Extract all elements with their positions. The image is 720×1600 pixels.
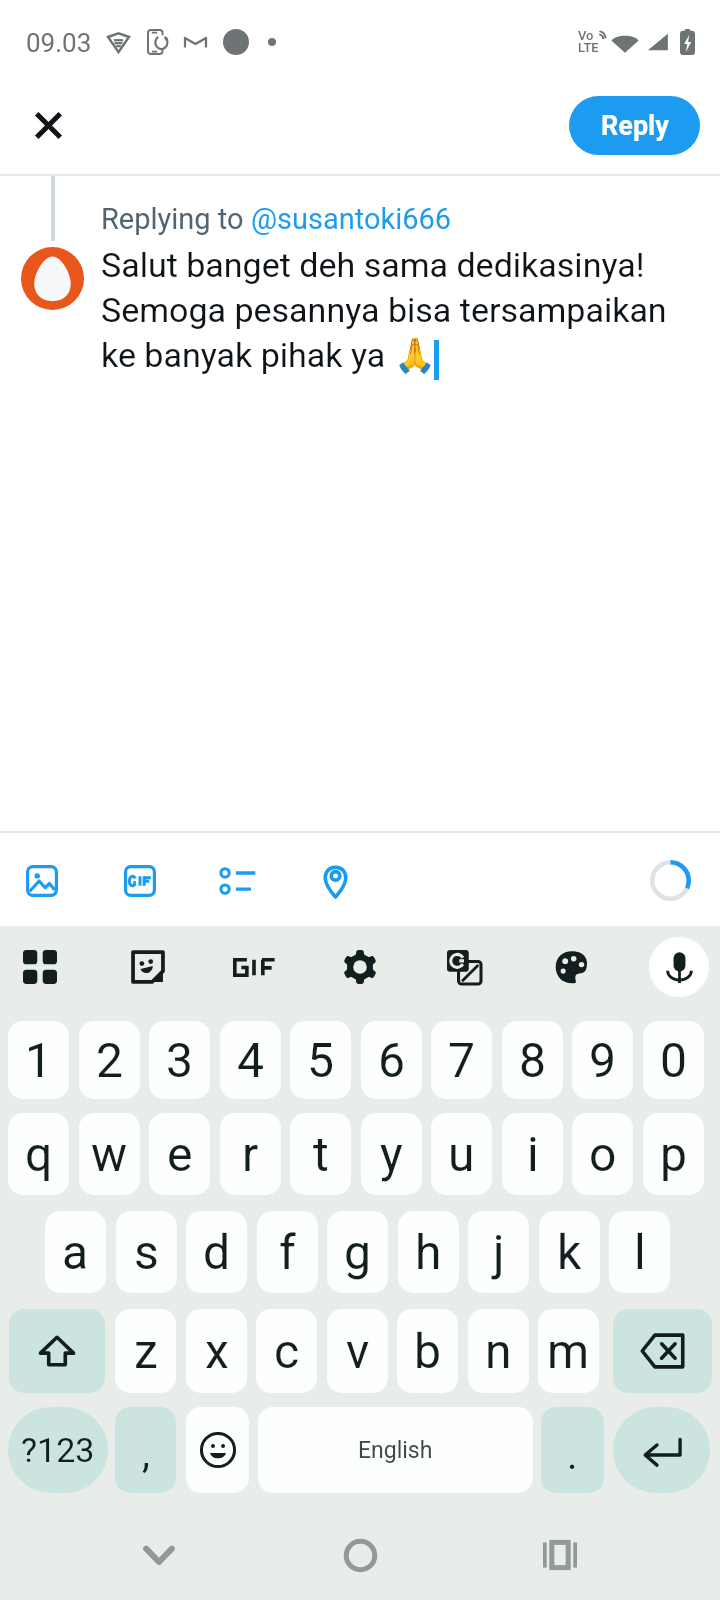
button[interactable]: x <box>186 1309 247 1393</box>
staticText: LTE <box>578 40 599 55</box>
button[interactable]: g <box>327 1211 388 1293</box>
staticText: 4 <box>237 1032 264 1088</box>
staticText: x <box>205 1323 229 1379</box>
button[interactable]: b <box>397 1309 458 1393</box>
staticText: o <box>589 1126 617 1182</box>
button[interactable]: a <box>45 1211 106 1293</box>
button[interactable]: Apps <box>8 935 72 999</box>
button[interactable]: d <box>186 1211 247 1293</box>
button[interactable]: i <box>502 1113 563 1195</box>
button[interactable]: w <box>79 1113 140 1195</box>
button[interactable]: Recents <box>525 1520 595 1590</box>
button[interactable]: m <box>538 1309 599 1393</box>
button[interactable]: 1 <box>8 1021 69 1099</box>
button[interactable]: Emoji <box>186 1407 249 1493</box>
staticText: 2 <box>96 1032 123 1088</box>
button[interactable]: c <box>256 1309 317 1393</box>
button[interactable]: 2 <box>79 1021 140 1099</box>
staticText: u <box>448 1126 475 1182</box>
staticText: 7 <box>448 1032 475 1088</box>
button[interactable]: English <box>258 1407 533 1493</box>
button[interactable]: 0 <box>643 1021 704 1099</box>
button[interactable]: Hide keyboard <box>124 1520 194 1590</box>
staticText: f <box>279 1224 296 1280</box>
button[interactable]: Add GIF <box>108 849 172 913</box>
staticText: m <box>547 1323 590 1379</box>
button[interactable]: Backspace <box>613 1309 712 1393</box>
button[interactable]: Reply <box>569 96 700 155</box>
button[interactable]: f <box>257 1211 318 1293</box>
button[interactable]: e <box>149 1113 210 1195</box>
button[interactable]: ?123 <box>8 1407 108 1493</box>
button[interactable]: 8 <box>502 1021 563 1099</box>
button[interactable]: Enter <box>613 1407 710 1493</box>
button[interactable]: 4 <box>220 1021 281 1099</box>
button[interactable]: s <box>116 1211 177 1293</box>
staticText: c <box>274 1323 300 1379</box>
staticText: Salut banget deh sama dedikasinya! Semog… <box>101 245 671 375</box>
button[interactable]: Translate <box>432 935 496 999</box>
button[interactable]: 9 <box>572 1021 633 1099</box>
button[interactable]: o <box>572 1113 633 1195</box>
button[interactable]: . <box>541 1407 604 1493</box>
staticText: 3 <box>166 1032 193 1088</box>
staticText: j <box>493 1224 505 1280</box>
button[interactable]: Voice input <box>649 937 709 997</box>
staticText: r <box>242 1126 259 1182</box>
staticText: g <box>344 1224 371 1280</box>
staticText: @susantoki666 <box>251 202 452 236</box>
button[interactable]: Add poll <box>206 849 270 913</box>
staticText: s <box>134 1224 159 1280</box>
button[interactable]: Character count <box>638 848 702 912</box>
button[interactable]: 6 <box>361 1021 422 1099</box>
staticText: Vo <box>578 28 594 43</box>
button[interactable]: 5 <box>290 1021 351 1099</box>
button[interactable]: l <box>609 1211 670 1293</box>
button[interactable]: k <box>539 1211 600 1293</box>
staticText: h <box>415 1224 442 1280</box>
staticText: n <box>485 1323 512 1379</box>
button[interactable]: Close <box>14 91 82 159</box>
staticText: 1 <box>25 1032 52 1088</box>
staticText: k <box>557 1224 582 1280</box>
button[interactable]: Themes <box>540 935 604 999</box>
button[interactable]: y <box>361 1113 422 1195</box>
button[interactable]: Home <box>325 1520 395 1590</box>
button[interactable]: 7 <box>431 1021 492 1099</box>
button[interactable]: Shift <box>9 1309 105 1393</box>
staticText: Reply <box>601 110 669 142</box>
staticText: a <box>62 1224 89 1280</box>
staticText: 09.03 <box>26 28 92 58</box>
button[interactable]: Add location <box>303 849 367 913</box>
button[interactable]: GIF <box>222 935 286 999</box>
button[interactable]: Settings <box>328 935 392 999</box>
staticText: z <box>134 1323 158 1379</box>
button[interactable]: 3 <box>149 1021 210 1099</box>
staticText: q <box>25 1126 53 1182</box>
staticText: l <box>634 1224 646 1280</box>
button[interactable]: Add photo <box>10 849 74 913</box>
button[interactable]: p <box>643 1113 704 1195</box>
staticText: 9 <box>589 1032 616 1088</box>
button[interactable]: Stickers <box>116 935 180 999</box>
button[interactable]: n <box>468 1309 529 1393</box>
button[interactable]: q <box>8 1113 69 1195</box>
button[interactable]: u <box>431 1113 492 1195</box>
staticText: . <box>567 1432 578 1479</box>
staticText: d <box>203 1224 231 1280</box>
staticText: e <box>167 1126 193 1182</box>
staticText: 0 <box>660 1032 687 1088</box>
staticText: Replying to <box>101 202 251 236</box>
button[interactable]: h <box>398 1211 459 1293</box>
button[interactable]: t <box>290 1113 351 1195</box>
staticText: English <box>358 1437 433 1464</box>
staticText: p <box>660 1126 687 1182</box>
button[interactable]: z <box>115 1309 176 1393</box>
staticText: ?123 <box>21 1430 95 1470</box>
button[interactable]: r <box>220 1113 281 1195</box>
staticText: , <box>142 1430 150 1477</box>
button[interactable]: v <box>327 1309 388 1393</box>
button[interactable]: j <box>468 1211 529 1293</box>
staticText: y <box>380 1126 403 1182</box>
button[interactable]: , <box>115 1407 176 1493</box>
